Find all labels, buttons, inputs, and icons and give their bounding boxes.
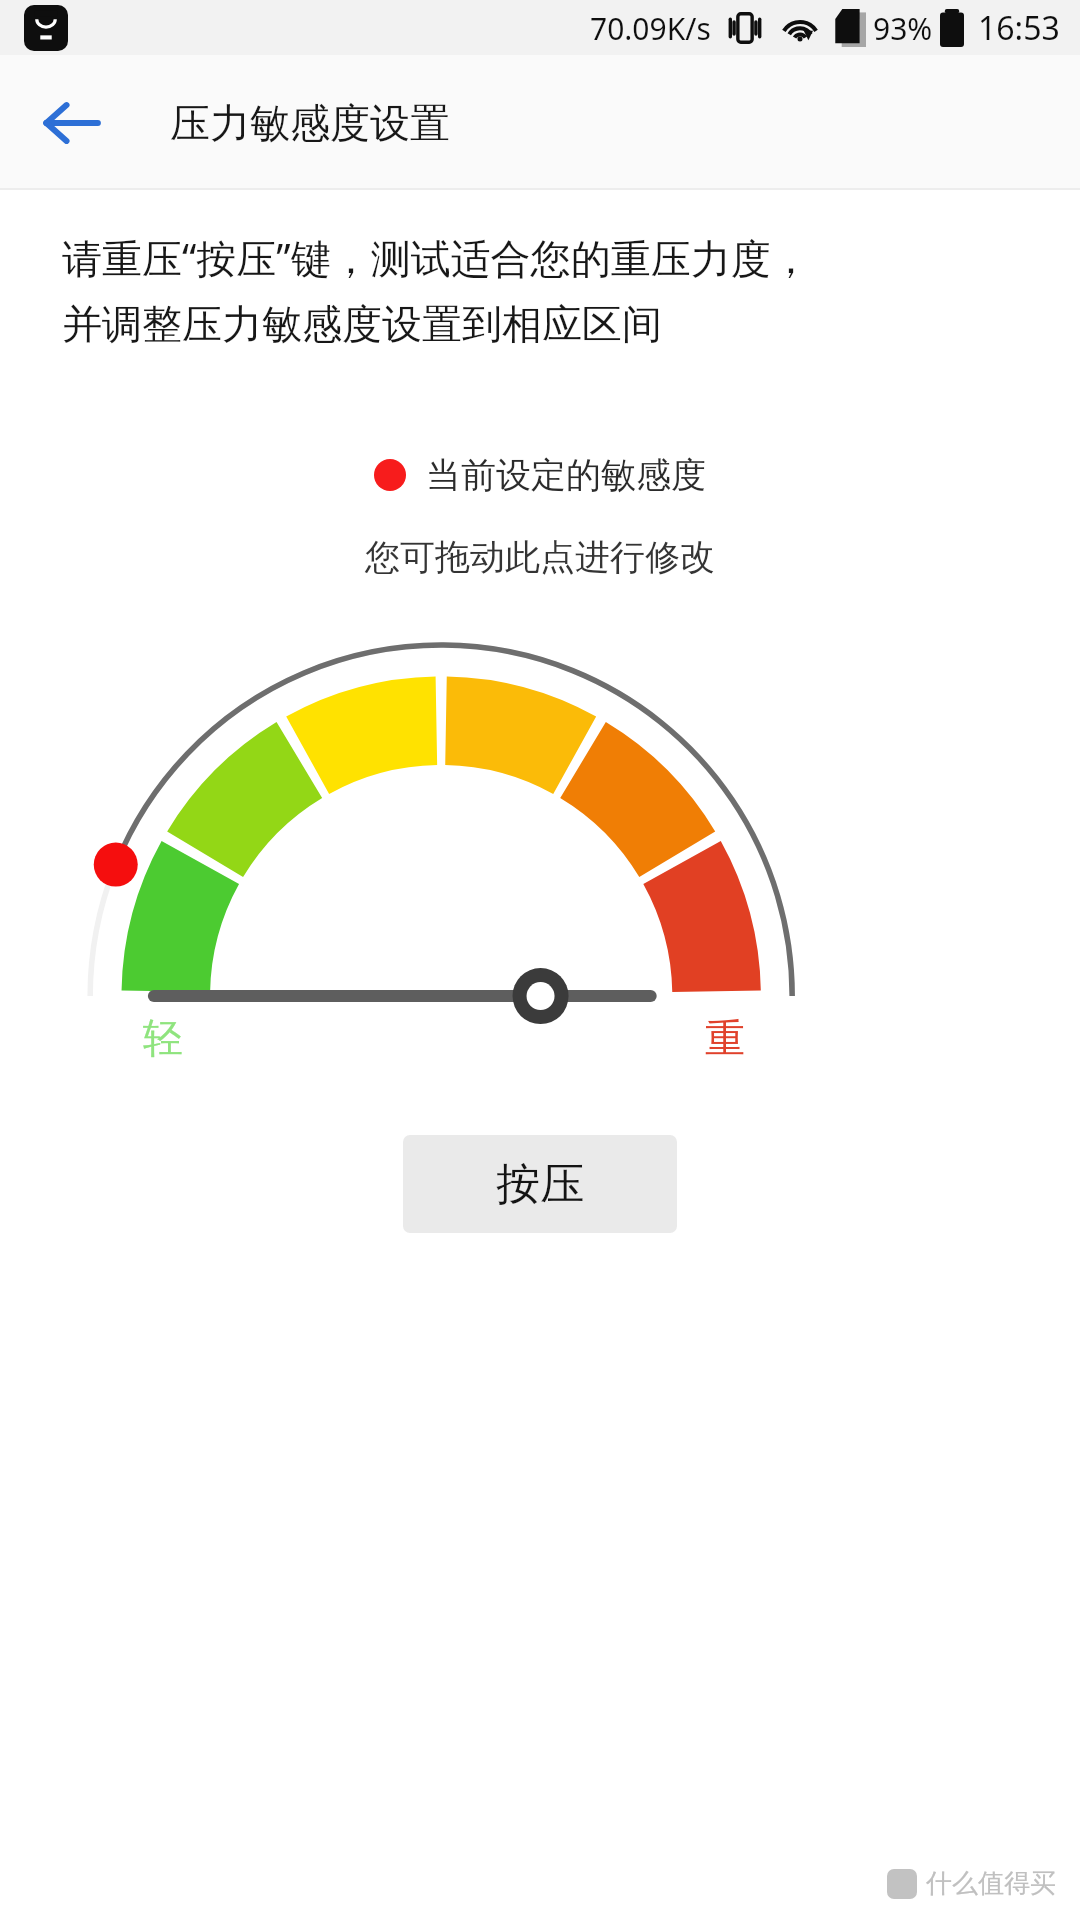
staticText: 请重压“按压”键，测试适合您的重压力度， bbox=[62, 230, 811, 285]
staticText: 您可拖动此点进行修改 bbox=[365, 535, 715, 579]
staticText: 并调整压力敏感度设置到相应区间 bbox=[62, 299, 662, 349]
button[interactable]: Back bbox=[32, 84, 110, 162]
staticText: 什么值得买 bbox=[926, 1867, 1056, 1900]
staticText: 压力敏感度设置 bbox=[170, 98, 450, 148]
staticText: 70.09K/s bbox=[590, 8, 711, 49]
staticText: 93% bbox=[873, 8, 933, 49]
button[interactable]: 按压 bbox=[403, 1135, 677, 1233]
staticText: 当前设定的敏感度 bbox=[426, 453, 706, 497]
staticText: 按压 bbox=[496, 1157, 584, 1212]
staticText: 重 bbox=[705, 1013, 745, 1063]
staticText: 16:53 bbox=[978, 6, 1060, 50]
staticText: 轻 bbox=[143, 1013, 183, 1063]
